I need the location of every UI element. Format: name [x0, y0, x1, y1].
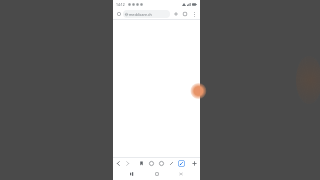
button[interactable]: More options	[190, 10, 198, 18]
button[interactable]: Privacy shield	[115, 10, 122, 17]
button[interactable]: Add	[191, 160, 198, 167]
button[interactable]: Tabs	[181, 10, 189, 18]
button[interactable]: Share	[168, 160, 175, 167]
button[interactable]: Back	[175, 169, 187, 179]
button[interactable]: Home	[151, 169, 163, 179]
button[interactable]: New tab	[172, 10, 180, 18]
staticText: meddicare.ch	[129, 12, 152, 17]
button[interactable]: Bookmark	[138, 160, 145, 167]
button[interactable]: Back	[115, 160, 122, 167]
button[interactable]: Downloads	[158, 160, 165, 167]
button[interactable]: Forward	[124, 160, 131, 167]
button[interactable]: History	[148, 160, 155, 167]
button[interactable]: Reading mode	[178, 160, 185, 167]
button[interactable]: meddicare.ch	[123, 10, 170, 18]
button[interactable]: Recent apps	[126, 169, 138, 179]
staticText: 14:12	[116, 2, 125, 7]
